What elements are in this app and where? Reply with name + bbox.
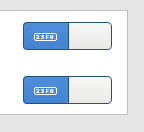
button[interactable]: Other option	[68, 22, 112, 50]
button[interactable]: Selected option	[23, 76, 68, 104]
button[interactable]: Selected option	[23, 22, 68, 50]
staticText: 23F0	[36, 33, 55, 41]
button[interactable]: Other option	[68, 76, 112, 104]
staticText: 23F0	[36, 87, 55, 95]
